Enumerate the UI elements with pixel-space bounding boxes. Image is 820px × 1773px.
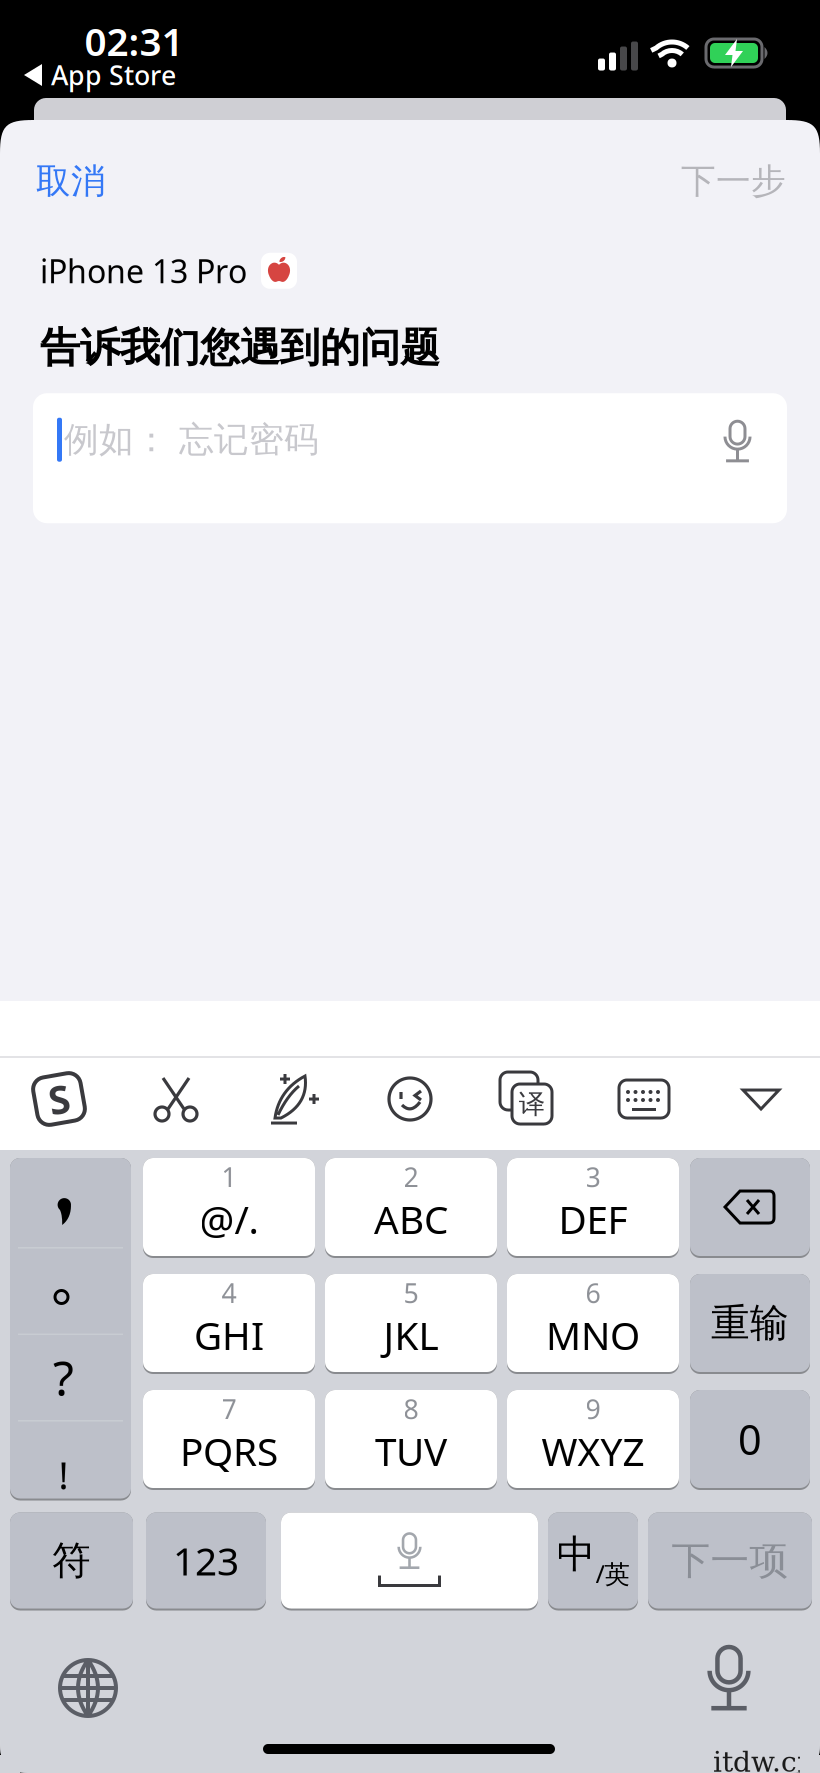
- button[interactable]: 123: [146, 1512, 266, 1610]
- button[interactable]: !: [10, 1421, 131, 1498]
- staticText: ABC: [374, 1193, 448, 1245]
- staticText: 下一项: [671, 1537, 788, 1584]
- staticText: ?: [53, 1346, 74, 1409]
- staticText: !: [58, 1450, 68, 1500]
- button[interactable]: 3: [507, 1158, 679, 1258]
- button[interactable]: 重输: [690, 1274, 810, 1374]
- staticText: 123: [173, 1535, 239, 1586]
- staticText: /英: [595, 1557, 629, 1590]
- staticText: 02:31: [84, 15, 183, 67]
- button[interactable]: 5: [325, 1274, 497, 1374]
- staticText: JKL: [383, 1309, 438, 1361]
- button[interactable]: 2: [325, 1158, 497, 1258]
- button[interactable]: Dismiss keyboard: [702, 1053, 819, 1145]
- button[interactable]: 中: [548, 1512, 638, 1610]
- staticText: S: [48, 1073, 69, 1125]
- staticText: 下一步: [681, 160, 786, 203]
- staticText: 1: [221, 1159, 236, 1195]
- button[interactable]: 下一项: [648, 1512, 812, 1610]
- button[interactable]: Dictation: [721, 421, 754, 465]
- button[interactable]: App Store: [24, 57, 176, 93]
- button[interactable]: 下一步: [681, 160, 786, 203]
- staticText: 8: [403, 1391, 418, 1427]
- staticText: @/.: [199, 1193, 258, 1245]
- staticText: 译: [518, 1088, 545, 1120]
- staticText: GHI: [194, 1309, 264, 1361]
- button[interactable]: Keyboard layout: [585, 1053, 702, 1145]
- staticText: 例如： 忘记密码: [64, 418, 319, 461]
- staticText: DEF: [558, 1193, 627, 1245]
- button[interactable]: 符: [10, 1512, 133, 1610]
- button[interactable]: 。: [10, 1248, 131, 1333]
- button[interactable]: Emoji: [351, 1053, 468, 1145]
- button[interactable]: 0: [690, 1390, 810, 1490]
- staticText: 3: [585, 1159, 600, 1195]
- button[interactable]: ?: [10, 1335, 131, 1420]
- button[interactable]: 7: [143, 1390, 315, 1490]
- staticText: 7: [221, 1391, 236, 1427]
- staticText: 5: [403, 1275, 418, 1311]
- staticText: 符: [52, 1537, 91, 1584]
- staticText: 取消: [36, 160, 106, 203]
- button[interactable]: Next keyboard: [57, 1657, 119, 1719]
- button[interactable]: 例如： 忘记密码: [33, 393, 787, 523]
- button[interactable]: Space: [281, 1512, 538, 1610]
- staticText: itdw.cn: [713, 1746, 815, 1773]
- staticText: 中: [556, 1531, 595, 1578]
- staticText: WXYZ: [541, 1425, 644, 1477]
- staticText: MNO: [546, 1309, 640, 1361]
- button[interactable]: Dictation: [703, 1647, 754, 1715]
- staticText: 重输: [711, 1299, 789, 1347]
- button[interactable]: Handwriting: [234, 1053, 351, 1145]
- staticText: 4: [221, 1275, 236, 1311]
- button[interactable]: 8: [325, 1390, 497, 1490]
- button[interactable]: 1: [143, 1158, 315, 1258]
- button[interactable]: Delete: [690, 1158, 810, 1258]
- staticText: 告诉我们您遇到的问题: [40, 323, 440, 372]
- staticText: TUV: [375, 1425, 447, 1477]
- button[interactable]: 取消: [36, 160, 106, 203]
- staticText: 2: [403, 1159, 418, 1195]
- staticText: PQRS: [180, 1425, 278, 1477]
- staticText: 9: [585, 1391, 600, 1427]
- button[interactable]: 4: [143, 1274, 315, 1374]
- button[interactable]: ，: [10, 1158, 131, 1247]
- button[interactable]: Sogou: [0, 1053, 117, 1145]
- staticText: iPhone 13 Pro: [40, 250, 247, 292]
- staticText: 6: [585, 1275, 600, 1311]
- staticText: App Store: [51, 57, 176, 93]
- button[interactable]: 9: [507, 1390, 679, 1490]
- button[interactable]: Translate: [468, 1053, 585, 1145]
- staticText: 0: [738, 1412, 762, 1466]
- button[interactable]: Clipboard: [117, 1053, 234, 1145]
- button[interactable]: 6: [507, 1274, 679, 1374]
